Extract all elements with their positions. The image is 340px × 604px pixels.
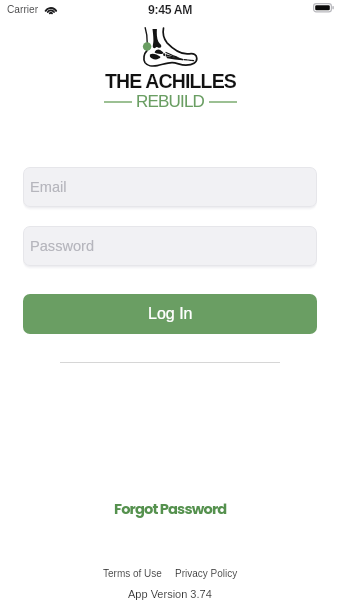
staticText: Privacy Policy [175,568,238,579]
button[interactable]: Terms of Use [100,564,165,583]
other: The Achilles Rebuild logo [140,26,198,66]
button[interactable]: Privacy Policy [172,564,241,583]
staticText: Password [30,238,95,254]
button[interactable]: Log In [23,294,317,334]
staticText: Terms of Use [103,568,162,579]
button[interactable]: Password [23,226,317,266]
staticText: App Version 3.74 [128,588,212,600]
staticText: Forgot Password [114,499,227,519]
staticText: 9:45 AM [148,3,193,17]
button[interactable]: Email [23,167,317,207]
button[interactable]: Forgot Password [100,493,241,525]
staticText: REBUILD [136,92,205,111]
staticText: Carrier [7,4,39,15]
staticText: Log In [148,305,193,323]
staticText: THE ACHILLES [105,70,236,92]
staticText: Email [30,179,67,195]
